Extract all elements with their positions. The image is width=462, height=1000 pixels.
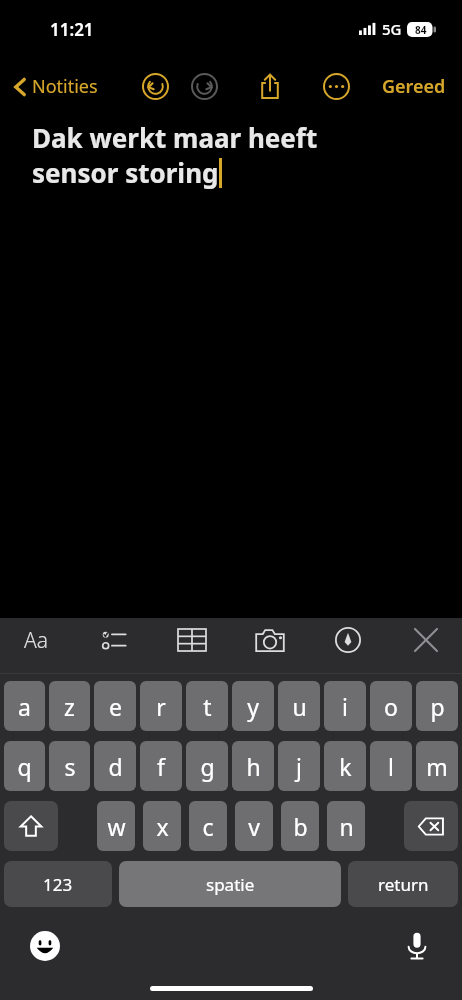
staticText: m <box>426 751 448 782</box>
button[interactable]: More <box>316 66 356 106</box>
button[interactable]: d <box>94 741 136 791</box>
button[interactable]: Redo <box>184 66 224 106</box>
button[interactable]: p <box>416 681 458 731</box>
button[interactable]: return <box>348 861 458 907</box>
staticText: v <box>248 811 260 842</box>
staticText: Gereed <box>382 74 446 99</box>
staticText: Aa <box>24 626 49 655</box>
button[interactable]: Share <box>250 66 290 106</box>
button[interactable]: Table <box>170 618 214 662</box>
button[interactable]: i <box>324 681 366 731</box>
staticText: b <box>293 811 308 842</box>
button[interactable]: v <box>235 801 273 851</box>
staticText: spatie <box>206 873 255 896</box>
button[interactable]: m <box>416 741 458 791</box>
button[interactable]: x <box>143 801 181 851</box>
button[interactable]: g <box>186 741 228 791</box>
staticText: 123 <box>43 873 73 896</box>
button[interactable]: spatie <box>119 861 341 907</box>
staticText: f <box>157 751 165 782</box>
staticText: n <box>339 811 354 842</box>
button[interactable]: Gereed <box>378 70 450 103</box>
staticText: 84 <box>415 23 427 37</box>
button[interactable]: Notities <box>10 70 102 103</box>
button[interactable]: Emoji <box>28 929 62 963</box>
staticText: x <box>156 811 169 842</box>
staticText: Notities <box>32 74 98 99</box>
button[interactable]: h <box>232 741 274 791</box>
staticText: j <box>296 751 302 782</box>
staticText: q <box>17 751 32 782</box>
button[interactable]: n <box>327 801 365 851</box>
staticText: return <box>378 873 429 896</box>
button[interactable]: Dictation <box>400 929 434 963</box>
button[interactable]: t <box>186 681 228 731</box>
button[interactable]: b <box>281 801 319 851</box>
staticText: a <box>18 691 31 722</box>
button[interactable]: y <box>232 681 274 731</box>
staticText: 11:21 <box>50 18 94 41</box>
staticText: y <box>247 691 259 722</box>
staticText: h <box>246 751 261 782</box>
staticText: l <box>388 751 394 782</box>
staticText: c <box>202 811 214 842</box>
button[interactable]: j <box>278 741 320 791</box>
button[interactable]: u <box>278 681 320 731</box>
button[interactable]: r <box>140 681 182 731</box>
staticText: Dak werkt maar heeft <box>32 120 318 155</box>
staticText: e <box>109 691 122 722</box>
button[interactable]: q <box>4 741 45 791</box>
button[interactable]: s <box>49 741 90 791</box>
button[interactable]: Backspace <box>404 801 458 851</box>
button[interactable]: z <box>49 681 90 731</box>
button[interactable]: Shift <box>4 801 58 851</box>
button[interactable]: Camera <box>248 618 292 662</box>
staticText: r <box>156 691 166 722</box>
staticText: t <box>203 691 212 722</box>
staticText: k <box>339 751 352 782</box>
button[interactable]: l <box>370 741 412 791</box>
button[interactable]: 123 <box>4 861 112 907</box>
staticText: i <box>342 691 348 722</box>
button[interactable]: e <box>94 681 136 731</box>
button[interactable]: k <box>324 741 366 791</box>
staticText: z <box>64 691 75 722</box>
staticText: u <box>292 691 307 722</box>
staticText: g <box>200 751 215 782</box>
staticText: o <box>384 691 398 722</box>
button[interactable]: Close keyboard <box>404 618 448 662</box>
button[interactable]: c <box>189 801 227 851</box>
staticText: sensor storing <box>32 155 219 190</box>
staticText: 5G <box>382 19 402 39</box>
button[interactable]: a <box>4 681 45 731</box>
button[interactable]: Checklist <box>92 618 136 662</box>
staticText: d <box>108 751 123 782</box>
staticText: s <box>64 751 76 782</box>
staticText: w <box>107 811 126 842</box>
button[interactable]: f <box>140 741 182 791</box>
button[interactable]: w <box>97 801 135 851</box>
button[interactable]: Markup <box>326 618 370 662</box>
button[interactable]: Text format <box>14 618 58 662</box>
staticText: p <box>430 691 445 722</box>
button[interactable]: Undo <box>135 66 175 106</box>
button[interactable]: o <box>370 681 412 731</box>
